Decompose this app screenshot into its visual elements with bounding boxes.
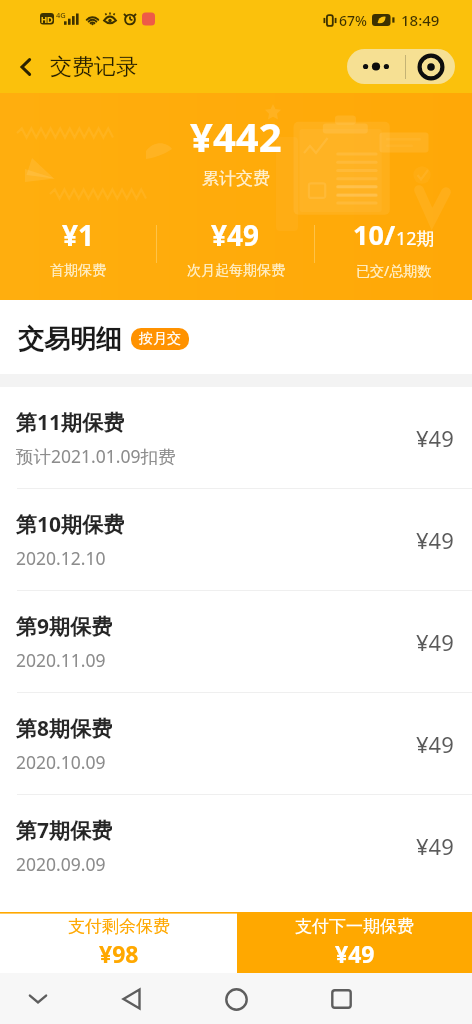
staticText: ¥1 xyxy=(62,216,95,254)
button[interactable]: Close xyxy=(406,49,455,84)
staticText: ¥49 xyxy=(416,831,454,861)
staticText: 支付下一期保费 xyxy=(295,916,414,937)
button[interactable]: 第9期保费 xyxy=(0,591,472,692)
button[interactable]: Recent apps xyxy=(320,978,362,1020)
button[interactable]: 第7期保费 xyxy=(0,795,472,896)
staticText: 2020.11.09 xyxy=(16,648,106,672)
staticText: 已交/总期数 xyxy=(356,261,432,278)
staticText: 12期 xyxy=(396,226,435,251)
staticText: 累计交费 xyxy=(202,168,270,189)
button[interactable]: Back xyxy=(8,49,44,85)
staticText: ¥49 xyxy=(416,729,454,759)
staticText: 次月起每期保费 xyxy=(187,262,285,278)
staticText: ¥442 xyxy=(190,109,282,163)
staticText: 18:49 xyxy=(401,10,440,30)
staticText: 第7期保费 xyxy=(16,816,113,845)
staticText: 预计2021.01.09扣费 xyxy=(16,444,176,468)
staticText: 第11期保费 xyxy=(16,408,125,437)
staticText: 第10期保费 xyxy=(16,510,125,539)
staticText: 10/ xyxy=(353,216,396,253)
staticText: 67% xyxy=(339,11,367,30)
staticText: ¥49 xyxy=(416,525,454,555)
button[interactable]: 第10期保费 xyxy=(0,489,472,590)
staticText: 交易明细 xyxy=(18,323,122,356)
staticText: 交费记录 xyxy=(50,53,138,81)
button[interactable]: 支付剩余保费 xyxy=(0,912,237,973)
staticText: 第8期保费 xyxy=(16,714,113,743)
button[interactable]: 第8期保费 xyxy=(0,693,472,794)
button[interactable]: Hide keyboard xyxy=(18,979,58,1019)
staticText: ¥98 xyxy=(99,938,139,969)
staticText: HD xyxy=(41,14,53,25)
button[interactable]: Back xyxy=(110,978,152,1020)
staticText: ¥49 xyxy=(416,423,454,453)
button[interactable]: 支付下一期保费 xyxy=(237,912,472,973)
button[interactable]: More options xyxy=(347,49,405,84)
button[interactable]: Home xyxy=(215,978,257,1020)
staticText: 支付剩余保费 xyxy=(68,916,170,937)
staticText: ¥49 xyxy=(211,216,260,254)
staticText: 2020.09.09 xyxy=(16,852,106,876)
staticText: 2020.12.10 xyxy=(16,546,106,570)
staticText: ¥49 xyxy=(335,938,375,969)
staticText: 第9期保费 xyxy=(16,612,113,641)
staticText: 4G xyxy=(56,10,66,20)
staticText: 2020.10.09 xyxy=(16,750,106,774)
button[interactable]: 第11期保费 xyxy=(0,387,472,488)
staticText: ¥49 xyxy=(416,627,454,657)
staticText: 按月交 xyxy=(139,330,181,348)
staticText: 首期保费 xyxy=(50,262,106,278)
